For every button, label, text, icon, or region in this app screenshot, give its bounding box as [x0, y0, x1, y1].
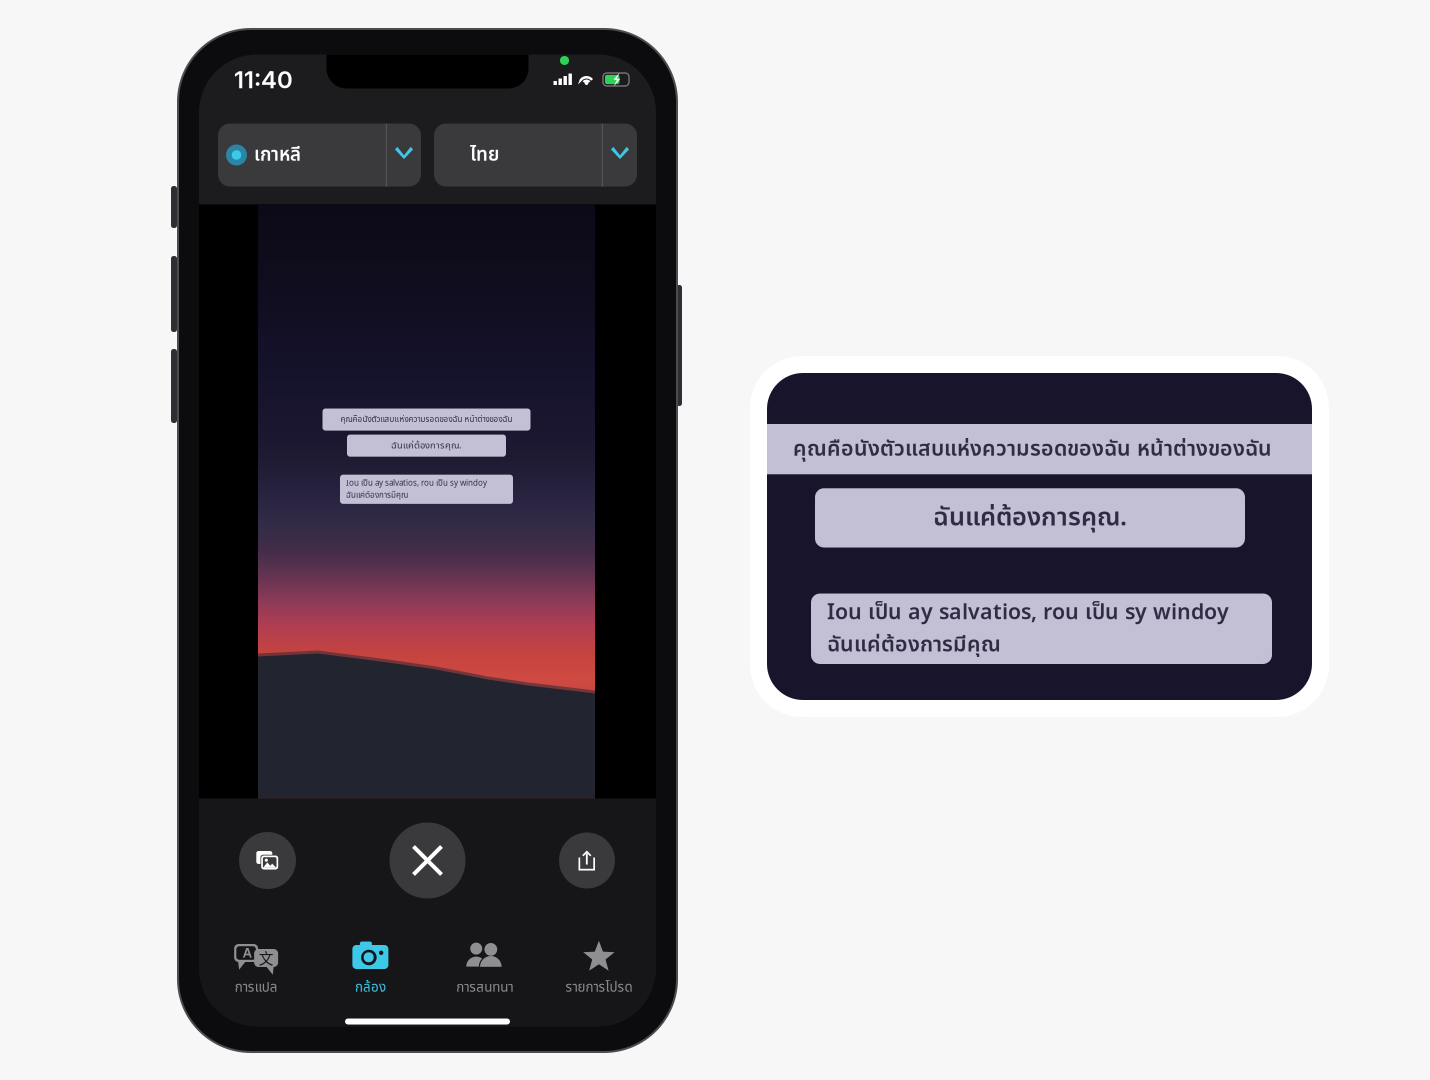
button[interactable]: การสนทนา — [427, 939, 542, 998]
staticText: รายการโปรด — [565, 977, 632, 998]
staticText: คุณคือนังตัวแสบแห่งความรอดของฉัน หน้าต่า… — [340, 413, 512, 426]
button[interactable]: 文 — [199, 939, 313, 998]
staticText: ฉันแค่ต้องการคุณ. — [391, 439, 462, 453]
staticText: 11:40 — [234, 65, 293, 94]
button[interactable]: Close — [389, 822, 465, 898]
button[interactable]: Photo library — [239, 832, 296, 889]
button[interactable]: กล้อง — [313, 939, 427, 998]
button[interactable]: ไทย — [434, 123, 637, 186]
staticText: คุณคือนังตัวแสบแห่งความรอดของฉัน หน้าต่า… — [793, 433, 1272, 465]
staticText: การสนทนา — [456, 977, 513, 998]
staticText: กล้อง — [355, 977, 386, 998]
staticText: 文 — [259, 947, 274, 968]
button[interactable]: เกาหลี — [218, 123, 421, 186]
staticText: ไทย — [470, 141, 499, 169]
staticText: เกาหลี — [254, 141, 301, 169]
button[interactable]: รายการโปรด — [542, 939, 656, 998]
staticText: ฉันแค่ต้องการคุณ. — [933, 499, 1127, 537]
staticText: การแปล — [235, 977, 278, 998]
staticText: Iou เป็น ay salvatios, rou เป็น sy windo… — [346, 477, 487, 501]
staticText: Iou เป็น ay salvatios, rou เป็น sy windo… — [827, 596, 1229, 661]
button[interactable]: Share — [559, 832, 615, 888]
